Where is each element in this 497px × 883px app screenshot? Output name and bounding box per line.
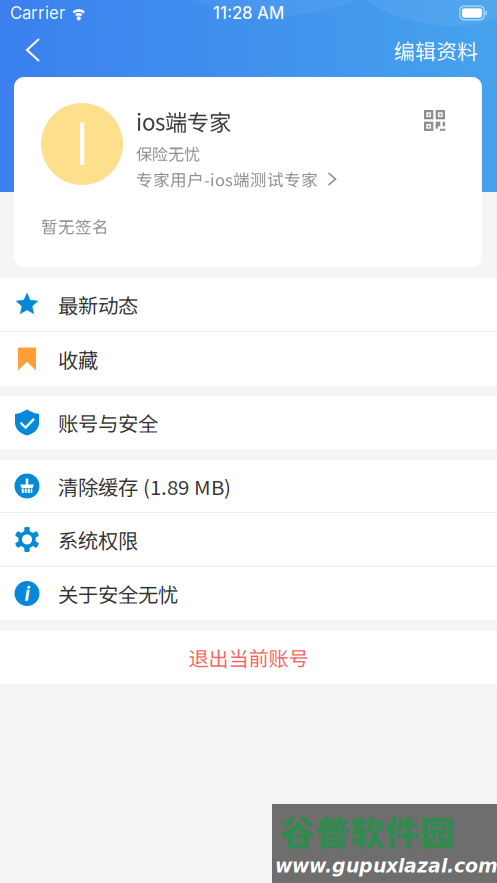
staticText: 11:28 AM	[213, 3, 284, 23]
staticText: 账号与安全	[58, 408, 158, 437]
staticText: Carrier	[10, 3, 65, 23]
button[interactable]: 最新动态	[0, 278, 497, 332]
staticText: 编辑资料	[394, 35, 478, 65]
staticText: 关于安全无忧	[58, 579, 178, 608]
staticText: 系统权限	[58, 525, 138, 554]
staticText: 清除缓存 (1.89 MB)	[58, 471, 231, 501]
button[interactable]: 系统权限	[0, 513, 497, 567]
staticText: 收藏	[58, 344, 98, 374]
staticText: 专家用户-ios端测试专家	[136, 167, 318, 191]
button[interactable]: 专家用户-ios端测试专家	[136, 164, 336, 190]
staticText: I	[74, 108, 89, 179]
button[interactable]: 编辑资料	[394, 28, 497, 72]
staticText: 退出当前账号	[188, 643, 308, 672]
button[interactable]: 清除缓存 (1.89 MB)	[0, 460, 497, 513]
button[interactable]: i	[0, 567, 497, 620]
staticText: 最新动态	[58, 290, 138, 319]
staticText: ios端专家	[136, 105, 231, 137]
staticText: i	[24, 581, 29, 606]
button[interactable]: 账号与安全	[0, 396, 497, 449]
button[interactable]: 收藏	[0, 332, 497, 386]
button[interactable]: QR code	[414, 100, 455, 141]
staticText: 谷普软件园	[280, 806, 455, 856]
staticText: 保险无忧	[136, 142, 200, 165]
staticText: 暂无签名	[41, 214, 109, 238]
button[interactable]: 退出当前账号	[0, 631, 497, 684]
staticText: www.gupuxlazal.com	[275, 855, 497, 877]
button[interactable]: Back	[0, 28, 54, 72]
